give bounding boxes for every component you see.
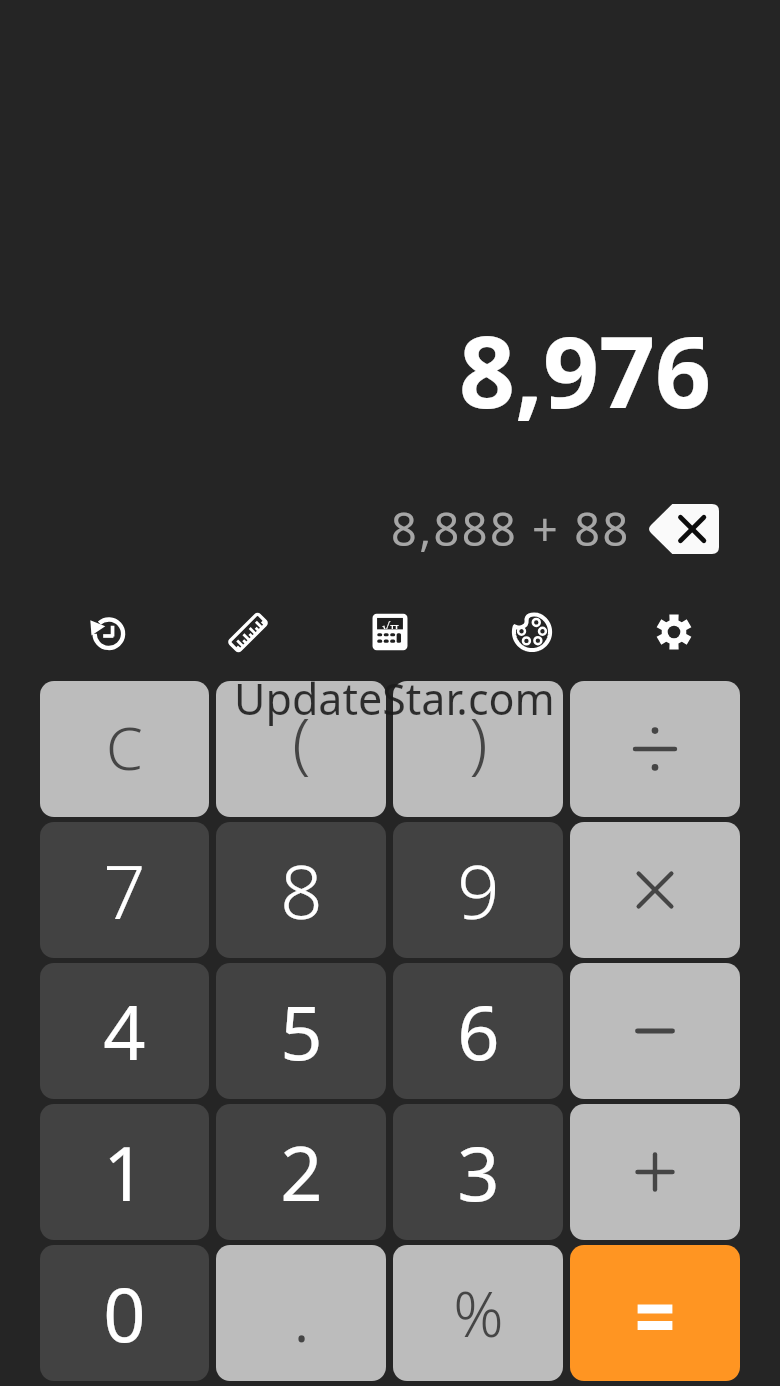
staticText: C (106, 707, 143, 787)
staticText: 1 (103, 1122, 146, 1223)
button[interactable]: 0 (40, 1245, 209, 1381)
staticText: ( (292, 695, 311, 785)
button[interactable]: 8 (216, 822, 386, 958)
button[interactable]: Subtract (570, 963, 740, 1099)
staticText: 4 (103, 981, 146, 1082)
button[interactable]: 1 (40, 1104, 209, 1240)
staticText: 7 (103, 840, 146, 941)
staticText: 8,888 + 88 (391, 498, 631, 559)
button[interactable]: 9 (393, 822, 563, 958)
button[interactable]: 4 (40, 963, 209, 1099)
staticText: UpdateStar.com (234, 669, 555, 728)
button[interactable]: Open parenthesis (216, 681, 386, 817)
button[interactable]: 6 (393, 963, 563, 1099)
button[interactable]: Multiply (570, 822, 740, 958)
staticText: 2 (280, 1122, 323, 1223)
button[interactable]: History (76, 602, 136, 662)
button[interactable]: Divide (570, 681, 740, 817)
button[interactable]: 3 (393, 1104, 563, 1240)
staticText: 5 (280, 981, 323, 1082)
button[interactable]: Equals (570, 1245, 740, 1381)
staticText: 8 (280, 840, 323, 941)
button[interactable]: Themes (502, 602, 562, 662)
button[interactable]: Unit converter (218, 602, 278, 662)
staticText: ) (469, 695, 488, 785)
staticText: 6 (457, 981, 500, 1082)
button[interactable]: 7 (40, 822, 209, 958)
staticText: 0 (103, 1263, 146, 1364)
button[interactable]: Decimal point (216, 1245, 386, 1381)
staticText: 3 (457, 1122, 500, 1223)
button[interactable]: Settings (644, 602, 704, 662)
button[interactable]: Percent (393, 1245, 563, 1381)
button[interactable]: Backspace (648, 499, 720, 559)
staticText: % (453, 1271, 504, 1355)
button[interactable]: 5 (216, 963, 386, 1099)
staticText: 8,976 (459, 303, 712, 436)
staticText: √π (382, 618, 399, 629)
button[interactable]: 2 (216, 1104, 386, 1240)
staticText: 9 (457, 840, 500, 941)
button[interactable]: Clear (40, 681, 209, 817)
button[interactable]: Add (570, 1104, 740, 1240)
button[interactable]: Scientific calculator (360, 602, 420, 662)
button[interactable]: Close parenthesis (393, 681, 563, 817)
staticText: . (292, 1263, 311, 1364)
